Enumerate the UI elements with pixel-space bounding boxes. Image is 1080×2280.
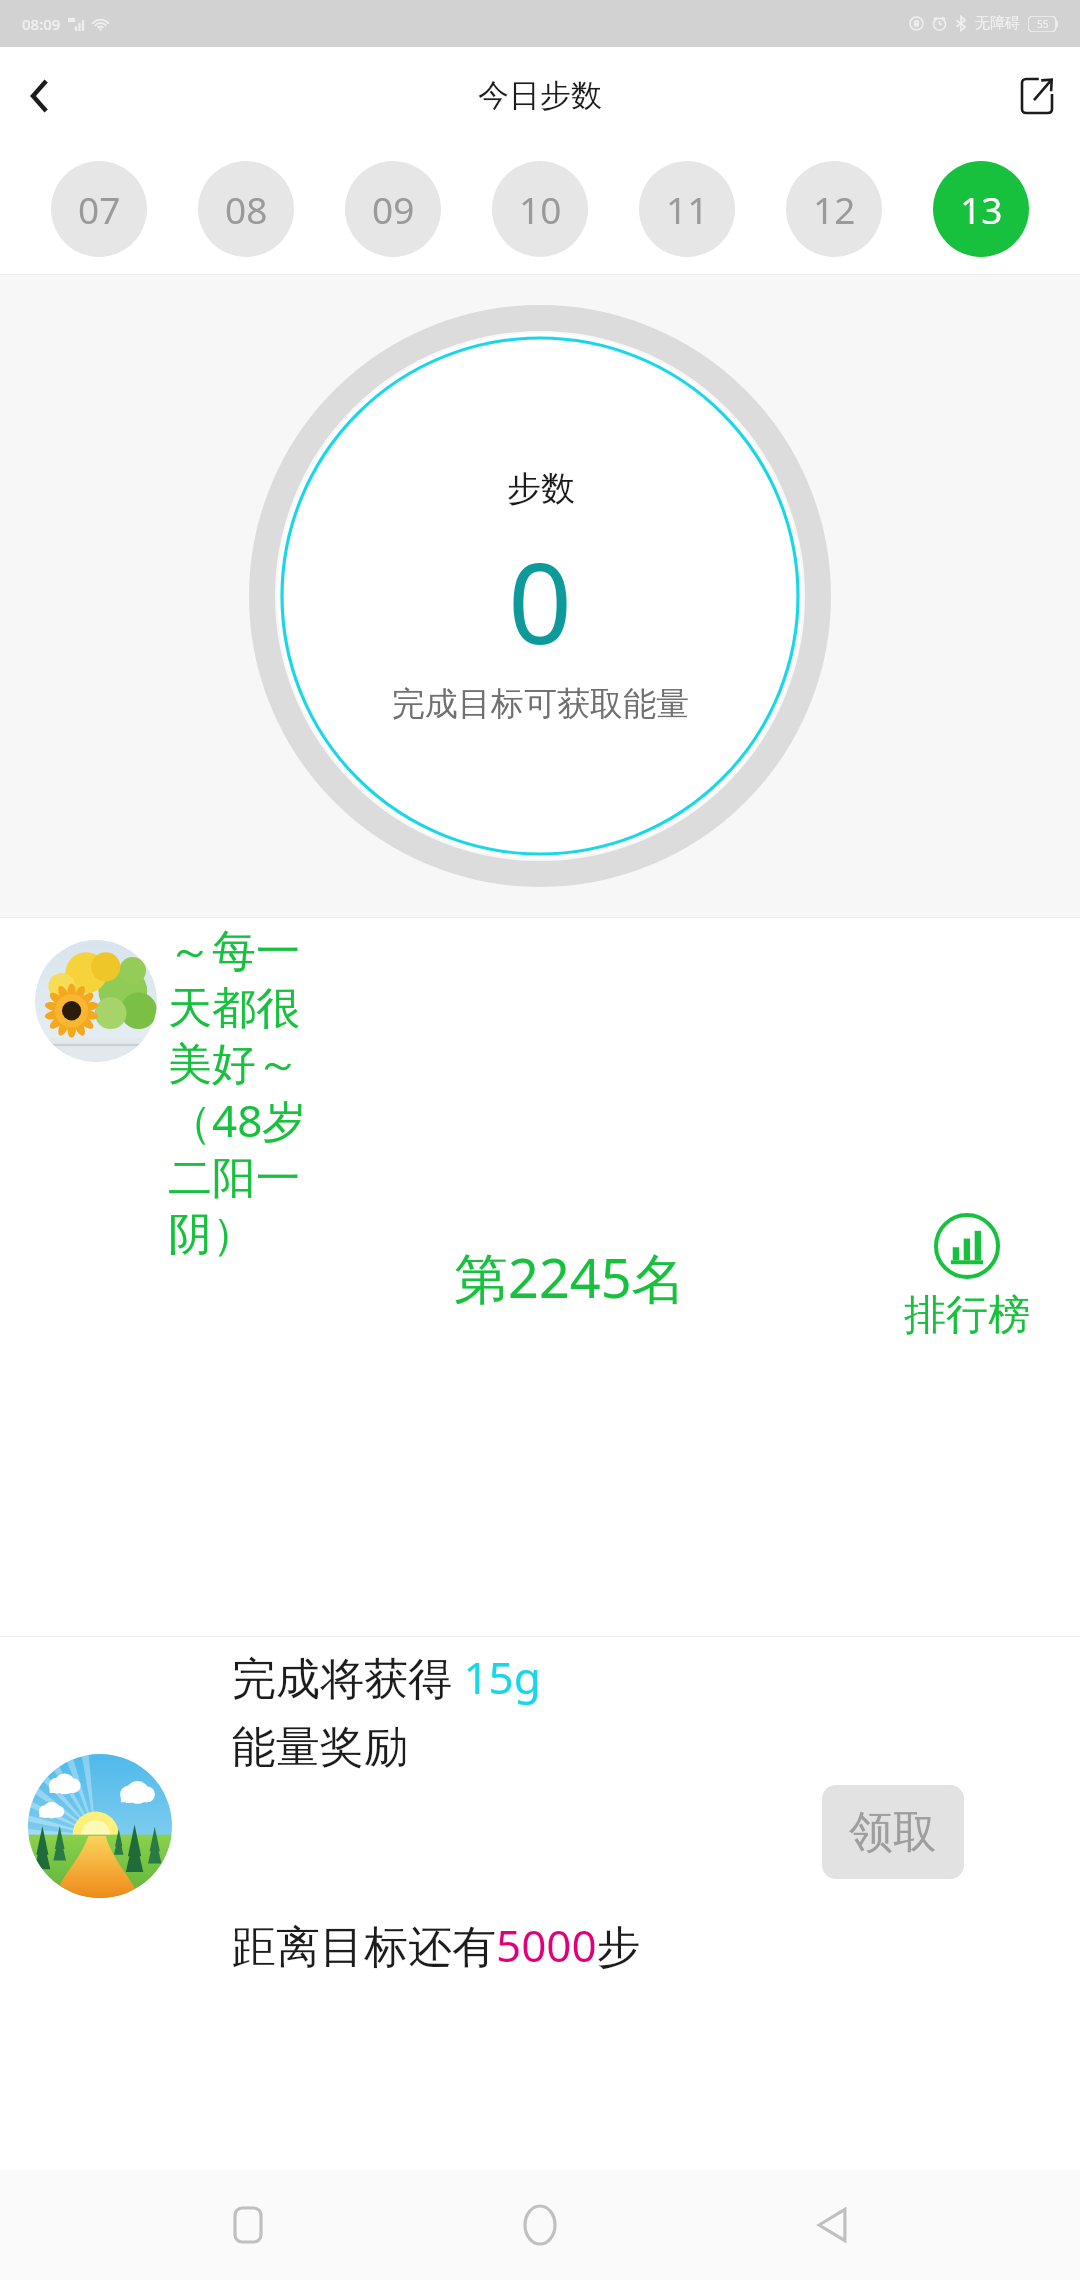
button[interactable]: 返回 [12,68,68,124]
button[interactable]: 09 [345,161,441,257]
staticText: 领取 [849,1805,937,1860]
staticText: 步数 [507,467,575,510]
button[interactable]: 12 [786,161,882,257]
staticText: 10 [519,184,562,234]
staticText: 55 [1037,17,1049,31]
staticText: 08 [225,184,268,234]
button[interactable]: 步数 [245,301,835,891]
staticText: 无障碍 [975,14,1020,33]
staticText: 07 [78,184,121,234]
button[interactable]: 领取 [822,1785,964,1879]
button[interactable]: 13 [933,161,1029,257]
button[interactable]: 07 [51,161,147,257]
button[interactable]: 11 [639,161,735,257]
button[interactable]: 排行榜 [904,1213,1030,1342]
button[interactable]: 用户头像 [35,940,157,1062]
staticText: 11 [666,184,709,234]
staticText: 距离目标还有5000步 [232,1915,641,1975]
staticText: 第2245名 [454,1240,686,1314]
staticText: 12 [813,184,856,234]
button[interactable]: 返回 [788,2181,876,2269]
staticText: 13 [960,184,1003,234]
button[interactable]: 最近任务 [204,2181,292,2269]
staticText: 完成目标可获取能量 [392,683,689,725]
staticText: 09 [372,184,415,234]
staticText: 0 [508,524,573,677]
button[interactable]: 主页 [496,2181,584,2269]
staticText: 排行榜 [904,1289,1030,1342]
button[interactable]: 分享 [1008,67,1066,125]
staticText: 完成将获得 15g 能量奖励 [232,1647,562,1775]
button[interactable]: 目标图标 [28,1754,172,1898]
staticText: 08:09 [22,14,61,34]
staticText: 今日步数 [478,76,602,115]
button[interactable]: 08 [198,161,294,257]
button[interactable]: 10 [492,161,588,257]
staticText: ～每一天都很美好～（48岁二阳一阴） [168,924,316,1262]
